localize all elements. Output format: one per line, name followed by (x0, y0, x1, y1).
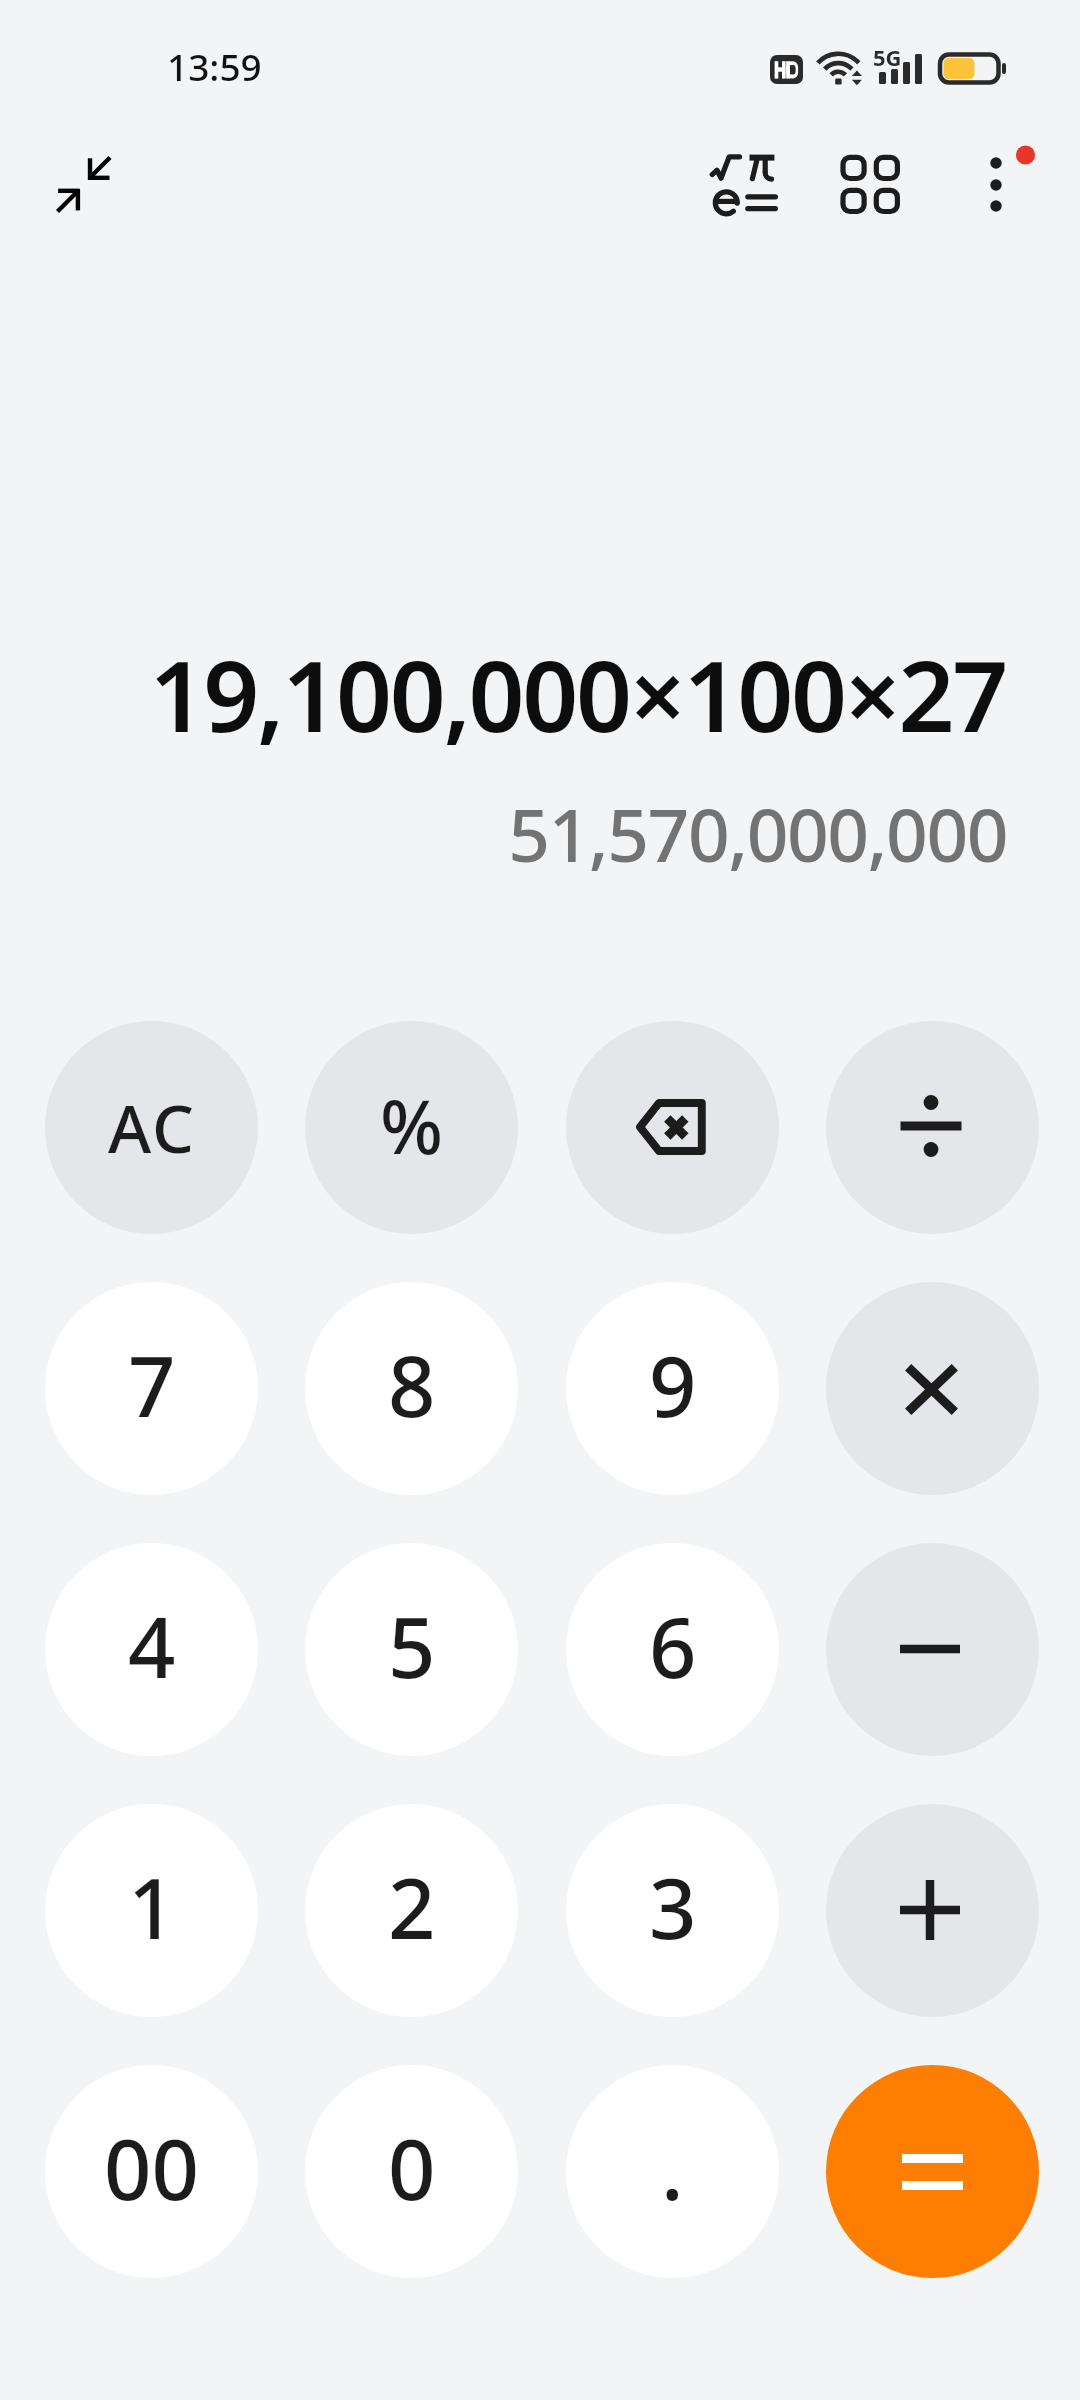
button[interactable]: 7 (45, 1282, 258, 1495)
button[interactable]: 5 (305, 1543, 518, 1756)
staticText: 13:59 (167, 41, 262, 91)
staticText: % (380, 1075, 444, 1176)
button[interactable]: 8 (305, 1282, 518, 1495)
button[interactable]: 9 (566, 1282, 779, 1495)
staticText: 3 (649, 1850, 697, 1963)
button[interactable]: 00 (45, 2065, 258, 2278)
button[interactable]: . (566, 2065, 779, 2278)
staticText: 0 (388, 2111, 436, 2224)
button[interactable]: 6 (566, 1543, 779, 1756)
staticText: AC (108, 1082, 196, 1172)
button[interactable]: Minus (826, 1543, 1039, 1756)
button[interactable]: 3 (566, 1804, 779, 2017)
staticText: 5G (873, 42, 902, 72)
button[interactable]: More options (952, 140, 1040, 228)
button[interactable]: Multiply (826, 1282, 1039, 1495)
button[interactable]: Plus (826, 1804, 1039, 2017)
staticText: 9 (649, 1328, 697, 1441)
staticText: 51,570,000,000 (0, 784, 1007, 883)
staticText: 00 (104, 2111, 199, 2224)
staticText: 7 (128, 1328, 176, 1441)
staticText: 19,100,000×100×27 (0, 627, 1006, 760)
button[interactable]: History (826, 140, 914, 228)
staticText: 1 (128, 1850, 176, 1963)
button[interactable]: 1 (45, 1804, 258, 2017)
button[interactable]: Equals (826, 2065, 1039, 2278)
staticText: 5 (388, 1589, 436, 1702)
staticText: 2 (388, 1850, 436, 1963)
button[interactable]: 2 (305, 1804, 518, 2017)
staticText: 8 (388, 1328, 436, 1441)
button[interactable]: AC (45, 1021, 258, 1234)
button[interactable]: 4 (45, 1543, 258, 1756)
button[interactable]: 0 (305, 2065, 518, 2278)
staticText: 4 (128, 1589, 176, 1702)
button[interactable]: % (305, 1021, 518, 1234)
staticText: . (661, 2111, 684, 2224)
staticText: 6 (649, 1589, 697, 1702)
button[interactable]: Scientific mode (692, 136, 792, 232)
button[interactable]: Backspace (566, 1021, 779, 1234)
button[interactable]: Divide (826, 1021, 1039, 1234)
button[interactable]: Collapse (32, 134, 136, 236)
